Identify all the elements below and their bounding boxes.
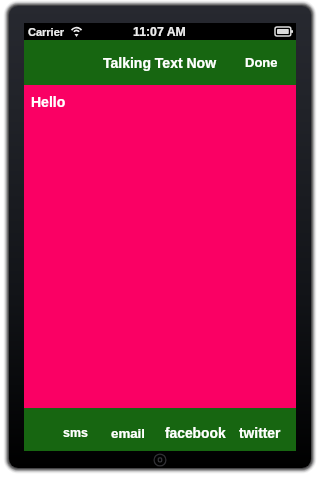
staticText: 11:07 AM [133,25,186,39]
staticText: Hello [31,94,66,110]
staticText: facebook [165,426,226,441]
button[interactable]: email [102,408,162,451]
button[interactable]: twitter [228,408,296,451]
staticText: email [111,426,146,441]
staticText: twitter [239,426,281,441]
staticText: sms [63,426,88,440]
button[interactable]: sms [24,408,102,451]
staticText: Done [245,55,278,70]
button[interactable]: facebook [162,408,228,451]
button[interactable]: Done [231,43,296,82]
staticText: Carrier [28,26,65,38]
button[interactable]: Home [150,450,170,470]
staticText: Talking Text Now [103,55,217,71]
